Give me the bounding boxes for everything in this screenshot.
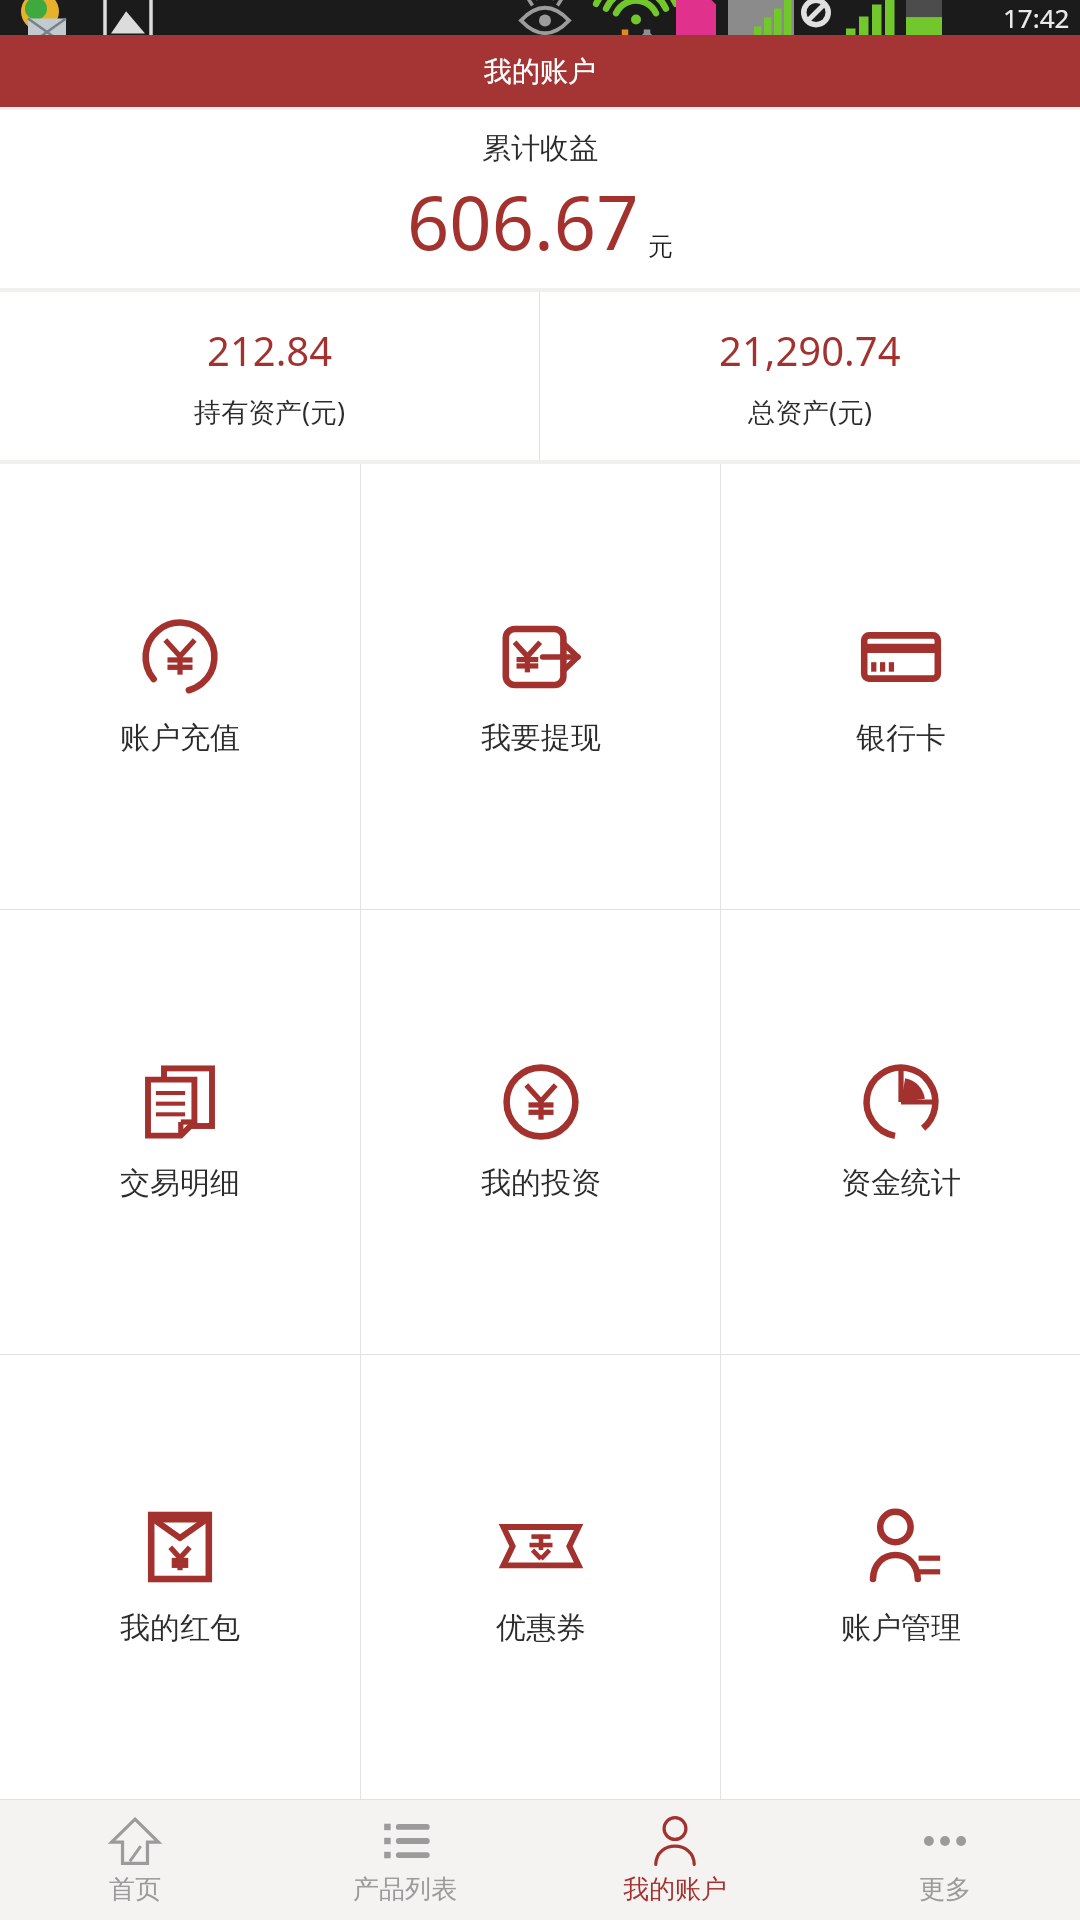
staticText: 我的账户 <box>623 1873 727 1906</box>
staticText: 606.67 <box>407 171 639 272</box>
staticText: 212.84 <box>207 323 333 377</box>
button[interactable]: 我的红包 <box>0 1355 360 1799</box>
staticText: 交易明细 <box>120 1164 240 1202</box>
staticText: 账户管理 <box>841 1609 961 1647</box>
staticText: 账户充值 <box>120 719 240 757</box>
staticText: 我要提现 <box>481 719 601 757</box>
button[interactable]: 账户管理 <box>721 1355 1080 1799</box>
staticText: 总资产(元) <box>748 393 873 430</box>
button[interactable]: 212.84 <box>0 292 539 460</box>
button[interactable]: 优惠券 <box>361 1355 720 1799</box>
staticText: 优惠券 <box>496 1609 586 1647</box>
staticText: 我的红包 <box>120 1609 240 1647</box>
staticText: 我的投资 <box>481 1164 601 1202</box>
button[interactable]: 账户充值 <box>0 464 360 909</box>
staticText: 17:42 <box>1003 0 1070 35</box>
staticText: 元 <box>648 231 673 262</box>
staticText: 更多 <box>919 1873 971 1906</box>
staticText: 21,290.74 <box>719 323 901 377</box>
button[interactable]: 我的账户 <box>540 1800 810 1920</box>
staticText: 资金统计 <box>841 1164 961 1202</box>
staticText: 持有资产(元) <box>194 393 346 430</box>
button[interactable]: 资金统计 <box>721 910 1080 1354</box>
button[interactable]: 21,290.74 <box>540 292 1080 460</box>
staticText: 产品列表 <box>353 1873 457 1906</box>
staticText: 我的账户 <box>484 54 596 89</box>
button[interactable]: 首页 <box>0 1800 270 1920</box>
button[interactable]: 产品列表 <box>270 1800 540 1920</box>
staticText: 累计收益 <box>482 130 598 167</box>
button[interactable]: 我要提现 <box>361 464 720 909</box>
staticText: 首页 <box>109 1873 161 1906</box>
button[interactable]: 我的投资 <box>361 910 720 1354</box>
button[interactable]: 交易明细 <box>0 910 360 1354</box>
button[interactable]: 银行卡 <box>721 464 1080 909</box>
button[interactable]: 更多 <box>810 1800 1080 1920</box>
staticText: 银行卡 <box>856 719 946 757</box>
